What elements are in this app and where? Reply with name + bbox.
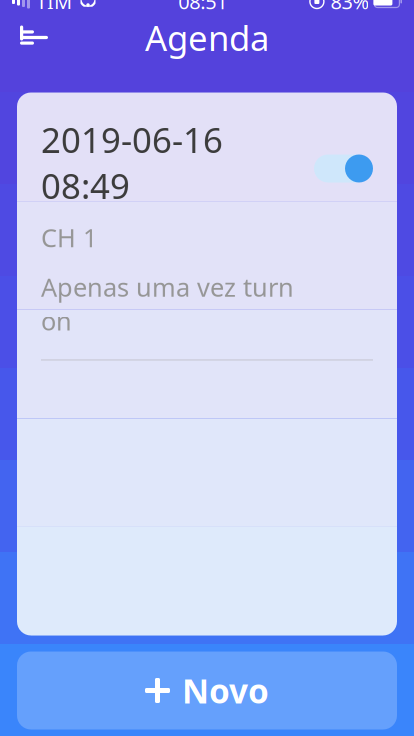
button[interactable]: Enable schedule xyxy=(318,154,373,182)
button[interactable]: Novo xyxy=(17,651,397,729)
staticText: CH 1 xyxy=(41,221,97,254)
staticText: Novo xyxy=(182,668,269,713)
staticText: 08:51 xyxy=(178,0,227,15)
staticText: TIM xyxy=(36,0,72,15)
staticText: Apenas uma vez turn on xyxy=(41,270,294,337)
staticText: Agenda xyxy=(145,14,269,60)
staticText: 2019-06-16 08:49 xyxy=(41,116,223,209)
button[interactable]: Back xyxy=(6,15,62,59)
staticText: 83% xyxy=(330,0,369,15)
button[interactable]: 2019-06-16 08:49 xyxy=(17,92,397,360)
